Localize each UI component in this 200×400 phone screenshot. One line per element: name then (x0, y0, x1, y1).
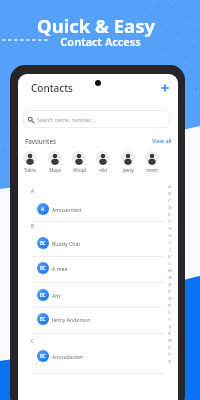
staticText: Quick & Easy (37, 13, 155, 38)
staticText: A (41, 206, 45, 213)
staticText: S (168, 310, 171, 316)
button[interactable]: BC (18, 282, 178, 308)
staticText: Favourites (25, 137, 56, 145)
button[interactable]: mom (140, 151, 164, 173)
staticText: F (168, 219, 171, 225)
staticText: A mee (52, 265, 68, 272)
staticText: M (168, 268, 172, 274)
staticText: I (169, 240, 171, 246)
staticText: B (31, 223, 34, 229)
staticText: Amusement (52, 206, 82, 213)
staticText: BC (40, 316, 46, 322)
staticText: V (168, 331, 171, 337)
staticText: BC (40, 292, 46, 298)
staticText: mom (146, 167, 158, 173)
staticText: G (168, 226, 172, 232)
staticText: Contacts (31, 81, 73, 95)
button[interactable]: Tokra (18, 151, 42, 173)
staticText: Jenny Anderson (52, 316, 91, 323)
staticText: J (169, 247, 171, 253)
staticText: Tokra (24, 167, 36, 173)
staticText: A (31, 188, 34, 194)
staticText: L (168, 261, 171, 267)
button[interactable]: BC (18, 230, 178, 256)
staticText: P (168, 289, 171, 295)
staticText: Q (168, 296, 172, 302)
staticText: View all (152, 137, 172, 144)
staticText: T (168, 317, 171, 323)
staticText: BC (40, 240, 46, 246)
staticText: R (168, 303, 171, 309)
button[interactable]: Maya (43, 151, 67, 173)
staticText: Y (168, 352, 171, 358)
staticText: Maya (49, 167, 61, 173)
staticText: Aht (52, 292, 61, 299)
staticText: K (168, 254, 171, 260)
staticText: N (168, 275, 172, 281)
staticText: BC (40, 265, 46, 271)
button[interactable]: View all (152, 137, 172, 144)
staticText: Anoradacten (52, 353, 84, 360)
staticText: jeesy (123, 167, 134, 173)
staticText: D (168, 205, 172, 211)
staticText: C (31, 338, 34, 344)
staticText: niki (99, 167, 107, 173)
button[interactable]: A (18, 196, 178, 222)
button[interactable]: jeesy (116, 151, 140, 173)
staticText: O (168, 282, 172, 288)
button[interactable]: Search name, number.... (23, 110, 170, 128)
button[interactable]: niki (91, 151, 115, 173)
staticText: BC (40, 353, 46, 359)
button[interactable]: BC (18, 343, 178, 369)
staticText: Buddy Chat (52, 240, 81, 247)
staticText: B (168, 191, 171, 197)
staticText: Khujd (73, 167, 86, 173)
button[interactable]: BC (18, 255, 178, 281)
staticText: H (168, 233, 172, 239)
button[interactable]: Khujd (67, 151, 91, 173)
staticText: E (168, 212, 171, 218)
staticText: Search name, number.... (37, 116, 96, 123)
staticText: Z (168, 359, 171, 365)
button[interactable]: BC (18, 306, 178, 332)
staticText: W (168, 338, 172, 344)
staticText: U (168, 324, 172, 330)
staticText: X (168, 345, 171, 351)
staticText: A (168, 184, 171, 190)
staticText: C (168, 198, 171, 204)
button[interactable]: Add contact (156, 79, 173, 96)
staticText: Contact Access (60, 34, 141, 49)
